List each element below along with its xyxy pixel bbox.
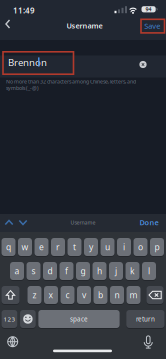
staticText: c	[65, 289, 69, 301]
staticText: t	[73, 241, 76, 253]
button[interactable]: g	[76, 262, 90, 280]
staticText: r	[56, 241, 60, 253]
button[interactable]: y	[84, 238, 98, 256]
button[interactable]: h	[92, 262, 106, 280]
button[interactable]: q	[1, 238, 15, 256]
staticText: s	[31, 265, 35, 277]
staticText: d	[47, 265, 52, 277]
button[interactable]: a	[10, 262, 24, 280]
button[interactable]: t	[67, 238, 81, 256]
staticText: e	[39, 241, 44, 253]
button[interactable]: b	[93, 286, 107, 304]
button[interactable]	[20, 310, 36, 328]
button[interactable]: n	[110, 286, 124, 304]
staticText: v	[82, 289, 86, 301]
staticText: Username	[70, 219, 95, 226]
button[interactable]: Done	[136, 216, 162, 228]
button[interactable]	[7, 336, 18, 347]
staticText: k	[130, 265, 135, 277]
staticText: w	[21, 241, 28, 253]
button[interactable]	[146, 286, 163, 304]
button[interactable]: x	[44, 286, 58, 304]
staticText: x	[48, 289, 53, 301]
button[interactable]: u	[100, 238, 114, 256]
button[interactable]: w	[18, 238, 32, 256]
button[interactable]: return	[126, 310, 164, 328]
button[interactable]: e	[34, 238, 48, 256]
staticText: q	[6, 241, 11, 253]
staticText: p	[154, 241, 159, 253]
button[interactable]	[5, 220, 14, 226]
staticText: j	[115, 265, 117, 277]
button[interactable]	[139, 61, 147, 68]
staticText: Brennon	[8, 56, 47, 69]
staticText: 11:49	[13, 5, 35, 16]
button[interactable]: c	[60, 286, 74, 304]
staticText: n	[114, 289, 119, 301]
staticText: No more than 32 characters among Chinese…	[6, 78, 136, 85]
staticText: return	[136, 315, 155, 323]
button[interactable]: space	[38, 310, 120, 328]
button[interactable]: k	[125, 262, 139, 280]
staticText: 94	[146, 6, 152, 13]
button[interactable]: d	[43, 262, 57, 280]
staticText: 123	[3, 315, 15, 323]
button[interactable]: 123	[1, 310, 17, 328]
button[interactable]: z	[27, 286, 41, 304]
staticText: h	[97, 265, 102, 277]
staticText: l	[148, 265, 150, 277]
staticText: a	[14, 265, 19, 277]
staticText: y	[89, 241, 93, 253]
button[interactable]: m	[126, 286, 140, 304]
button[interactable]: l	[142, 262, 156, 280]
button[interactable]: v	[77, 286, 91, 304]
button[interactable]: i	[117, 238, 131, 256]
staticText: f	[65, 265, 68, 277]
staticText: i	[123, 241, 125, 253]
button[interactable]: s	[26, 262, 40, 280]
button[interactable]	[0, 55, 166, 77]
button[interactable]: j	[109, 262, 123, 280]
button[interactable]	[144, 335, 153, 348]
staticText: o	[138, 241, 143, 253]
button[interactable]: p	[150, 238, 164, 256]
staticText: u	[105, 241, 110, 253]
button[interactable]	[19, 220, 28, 226]
staticText: symbols (_-@)	[6, 84, 39, 92]
staticText: b	[98, 289, 103, 301]
staticText: g	[80, 265, 85, 277]
button[interactable]: Save	[141, 19, 163, 32]
staticText: z	[32, 289, 36, 301]
staticText: Done	[139, 217, 158, 227]
staticText: m	[129, 289, 137, 301]
button[interactable]: o	[133, 238, 147, 256]
staticText: Save	[144, 21, 160, 31]
staticText: Username	[66, 21, 102, 31]
button[interactable]: r	[51, 238, 65, 256]
button[interactable]: f	[59, 262, 73, 280]
button[interactable]	[1, 286, 19, 304]
button[interactable]	[5, 19, 14, 31]
staticText: space	[70, 315, 88, 323]
